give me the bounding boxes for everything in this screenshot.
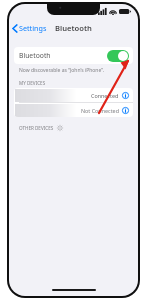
button[interactable]: Not Connected [14, 103, 133, 117]
button[interactable]: Bluetooth [14, 47, 133, 64]
staticText: OTHER DEVICES [19, 125, 54, 131]
button[interactable]: More info [122, 92, 129, 99]
staticText: Connected [91, 92, 119, 99]
button[interactable]: More info [122, 107, 129, 114]
staticText: Bluetooth [19, 51, 51, 60]
button[interactable]: Settings [12, 23, 47, 33]
staticText: Now discoverable as “John’s iPhone”. [19, 67, 105, 74]
staticText: Not Connected [81, 107, 119, 114]
button[interactable]: Bluetooth on [107, 50, 129, 62]
staticText: Bluetooth [55, 23, 92, 33]
staticText: MY DEVICES [19, 80, 46, 86]
staticText: Settings [19, 23, 47, 33]
button[interactable]: Connected [14, 88, 133, 102]
